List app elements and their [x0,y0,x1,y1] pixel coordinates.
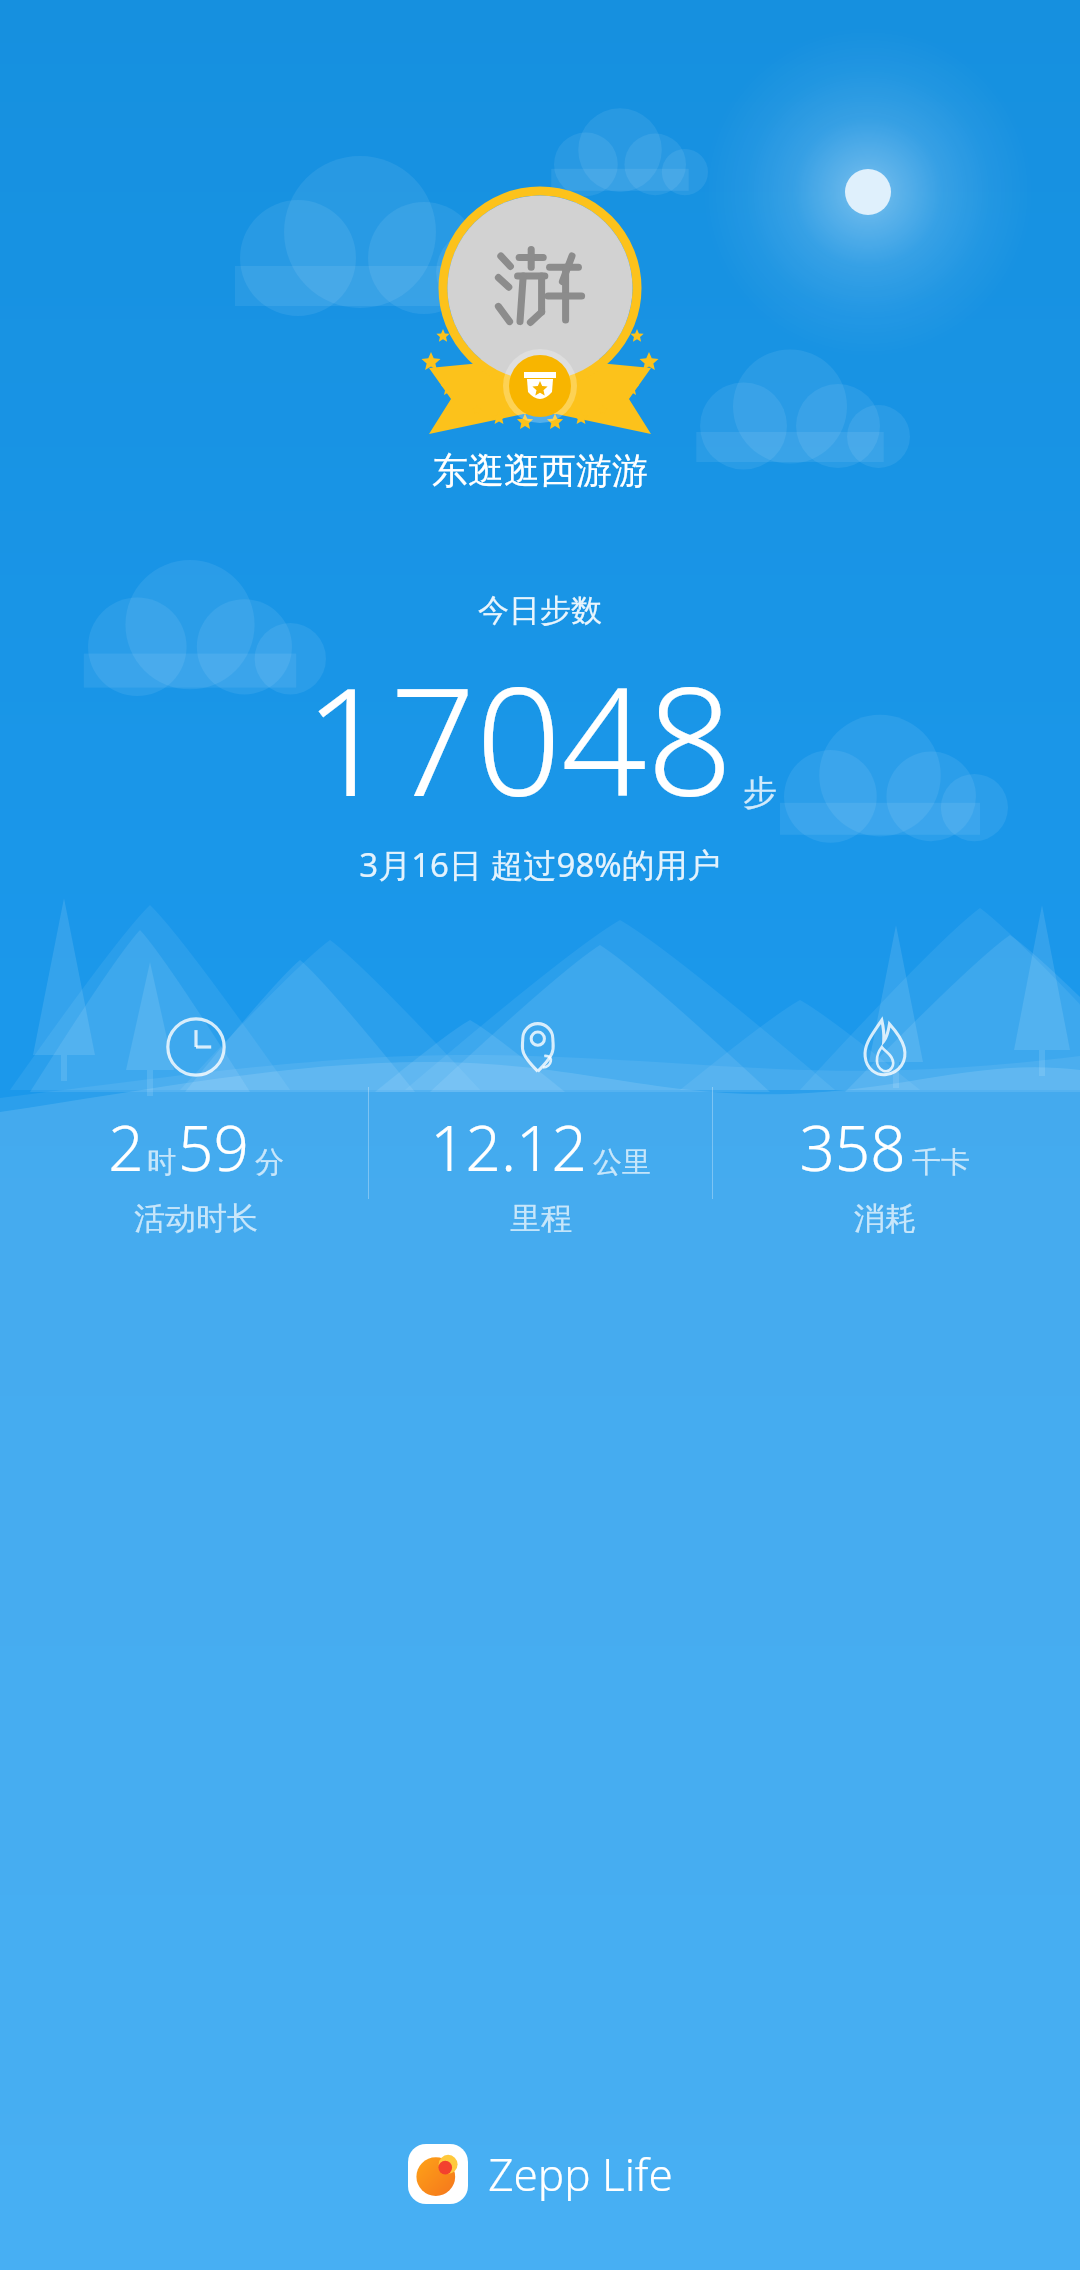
staticText: 活动时长 [134,1199,258,1238]
staticText: 公里 [593,1144,651,1181]
staticText: 今日步数 [478,591,602,630]
staticText: 2 [108,1105,144,1189]
staticText: 消耗 [854,1199,916,1238]
staticText: 12.12 [430,1105,587,1189]
staticText: Zepp Life [488,2144,673,2204]
other: 消耗 [853,1015,917,1079]
staticText: 里程 [510,1199,572,1238]
staticText: 358 [799,1105,906,1189]
button[interactable]: 里程 [369,1015,712,1238]
staticText: 东逛逛西游游 [432,448,648,493]
staticText: 17048 [304,636,733,840]
staticText: 步 [743,771,777,814]
staticText: 时 [147,1144,176,1181]
button[interactable]: Zepp Life [400,2136,681,2212]
staticText: 59 [178,1105,249,1189]
staticText: 千卡 [912,1144,970,1181]
button[interactable]: Medal badge 东逛逛西游游 [409,186,671,444]
button[interactable]: 消耗 [713,1015,1056,1238]
other: 活动时长 [164,1015,228,1079]
other: 里程 [509,1015,573,1079]
button[interactable]: 活动时长 [24,1015,368,1238]
staticText: 分 [255,1144,284,1181]
staticText: 3月16日 超过98%的用户 [359,842,721,887]
